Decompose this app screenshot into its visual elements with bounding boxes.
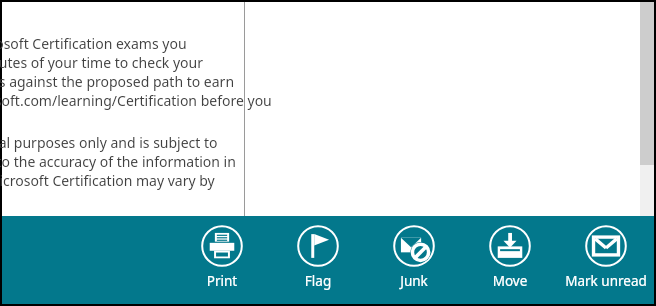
staticText: Flag: [270, 272, 366, 290]
staticText: deprecating Microsoft Certification exam…: [0, 34, 187, 53]
staticText: is for informational purposes only and i…: [0, 133, 218, 152]
staticText: no warranties as to the accuracy of the …: [0, 152, 236, 171]
button[interactable]: Junk: [366, 216, 462, 304]
staticText: Move: [462, 272, 558, 290]
button[interactable]: Mark unread: [558, 216, 654, 304]
staticText: Print: [174, 272, 270, 290]
button[interactable]: Print: [174, 216, 270, 304]
staticText: certification status against the propose…: [0, 72, 235, 91]
button[interactable]: Move: [462, 216, 558, 304]
staticText: Mark unread: [558, 272, 654, 290]
staticText: it takes a few minutes of your time to c…: [0, 53, 204, 72]
staticText: Junk: [366, 272, 462, 290]
staticText: the https://microsoft.com/learning/Certi…: [0, 91, 272, 110]
staticText: Availability of a Microsoft Certificatio…: [0, 171, 215, 190]
button[interactable]: Flag: [270, 216, 366, 304]
